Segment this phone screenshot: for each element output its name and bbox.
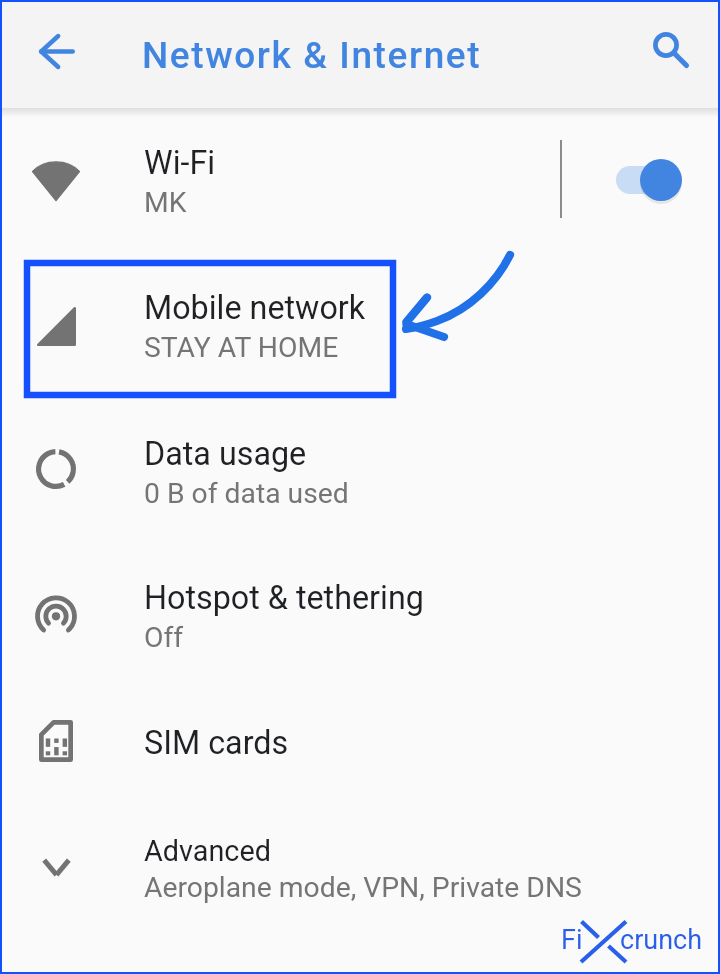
staticText: SIM cards: [144, 724, 289, 762]
button[interactable]: Mobile network: [0, 253, 720, 398]
staticText: Off: [144, 621, 184, 654]
staticText: MK: [144, 186, 187, 219]
staticText: Fi: [561, 924, 583, 956]
button[interactable]: SIM cards: [0, 688, 720, 796]
staticText: 0 B of data used: [144, 477, 349, 510]
button[interactable]: Hotspot & tethering: [0, 543, 720, 688]
button[interactable]: Advanced: [0, 796, 720, 941]
staticText: Advanced: [144, 834, 271, 868]
staticText: crunch: [620, 924, 703, 956]
button[interactable]: Wi-Fi: [0, 108, 720, 253]
button[interactable]: Back: [35, 29, 79, 73]
button[interactable]: Search: [647, 26, 697, 76]
staticText: Data usage: [144, 435, 307, 473]
staticText: Aeroplane mode, VPN, Private DNS: [144, 871, 582, 904]
staticText: Hotspot & tethering: [144, 579, 424, 617]
button[interactable]: Data usage: [0, 398, 720, 543]
staticText: Wi-Fi: [144, 144, 216, 182]
button[interactable]: Wi-Fi toggle: [608, 155, 690, 205]
staticText: STAY AT HOME: [144, 331, 339, 364]
staticText: Network & Internet: [142, 34, 482, 77]
staticText: Mobile network: [144, 289, 366, 327]
